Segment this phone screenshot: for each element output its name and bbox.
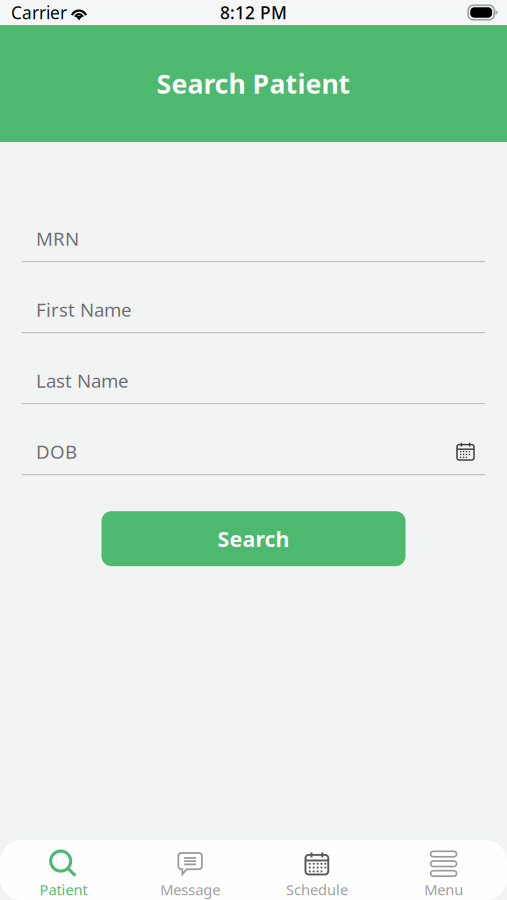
staticText: MRN bbox=[36, 226, 79, 251]
button[interactable]: Message bbox=[127, 836, 254, 900]
button[interactable]: Choose date of birth bbox=[454, 442, 477, 461]
button[interactable]: Patient bbox=[0, 836, 127, 900]
staticText: Patient bbox=[39, 880, 87, 899]
button[interactable]: MRN bbox=[36, 216, 477, 261]
staticText: First Name bbox=[36, 297, 132, 322]
button[interactable]: DOB bbox=[36, 429, 454, 474]
button[interactable]: Search bbox=[101, 511, 405, 566]
staticText: Schedule bbox=[286, 880, 348, 899]
button[interactable]: First Name bbox=[36, 287, 477, 332]
staticText: DOB bbox=[36, 439, 77, 464]
button[interactable]: Schedule bbox=[253, 836, 380, 900]
staticText: Last Name bbox=[36, 368, 129, 393]
staticText: Menu bbox=[424, 880, 463, 899]
staticText: Carrier bbox=[11, 1, 67, 24]
staticText: Message bbox=[160, 880, 220, 899]
staticText: Search bbox=[217, 524, 289, 553]
button[interactable]: Menu bbox=[380, 836, 507, 900]
staticText: 8:12 PM bbox=[220, 1, 287, 24]
staticText: Search Patient bbox=[156, 66, 350, 101]
button[interactable]: Last Name bbox=[36, 358, 477, 403]
